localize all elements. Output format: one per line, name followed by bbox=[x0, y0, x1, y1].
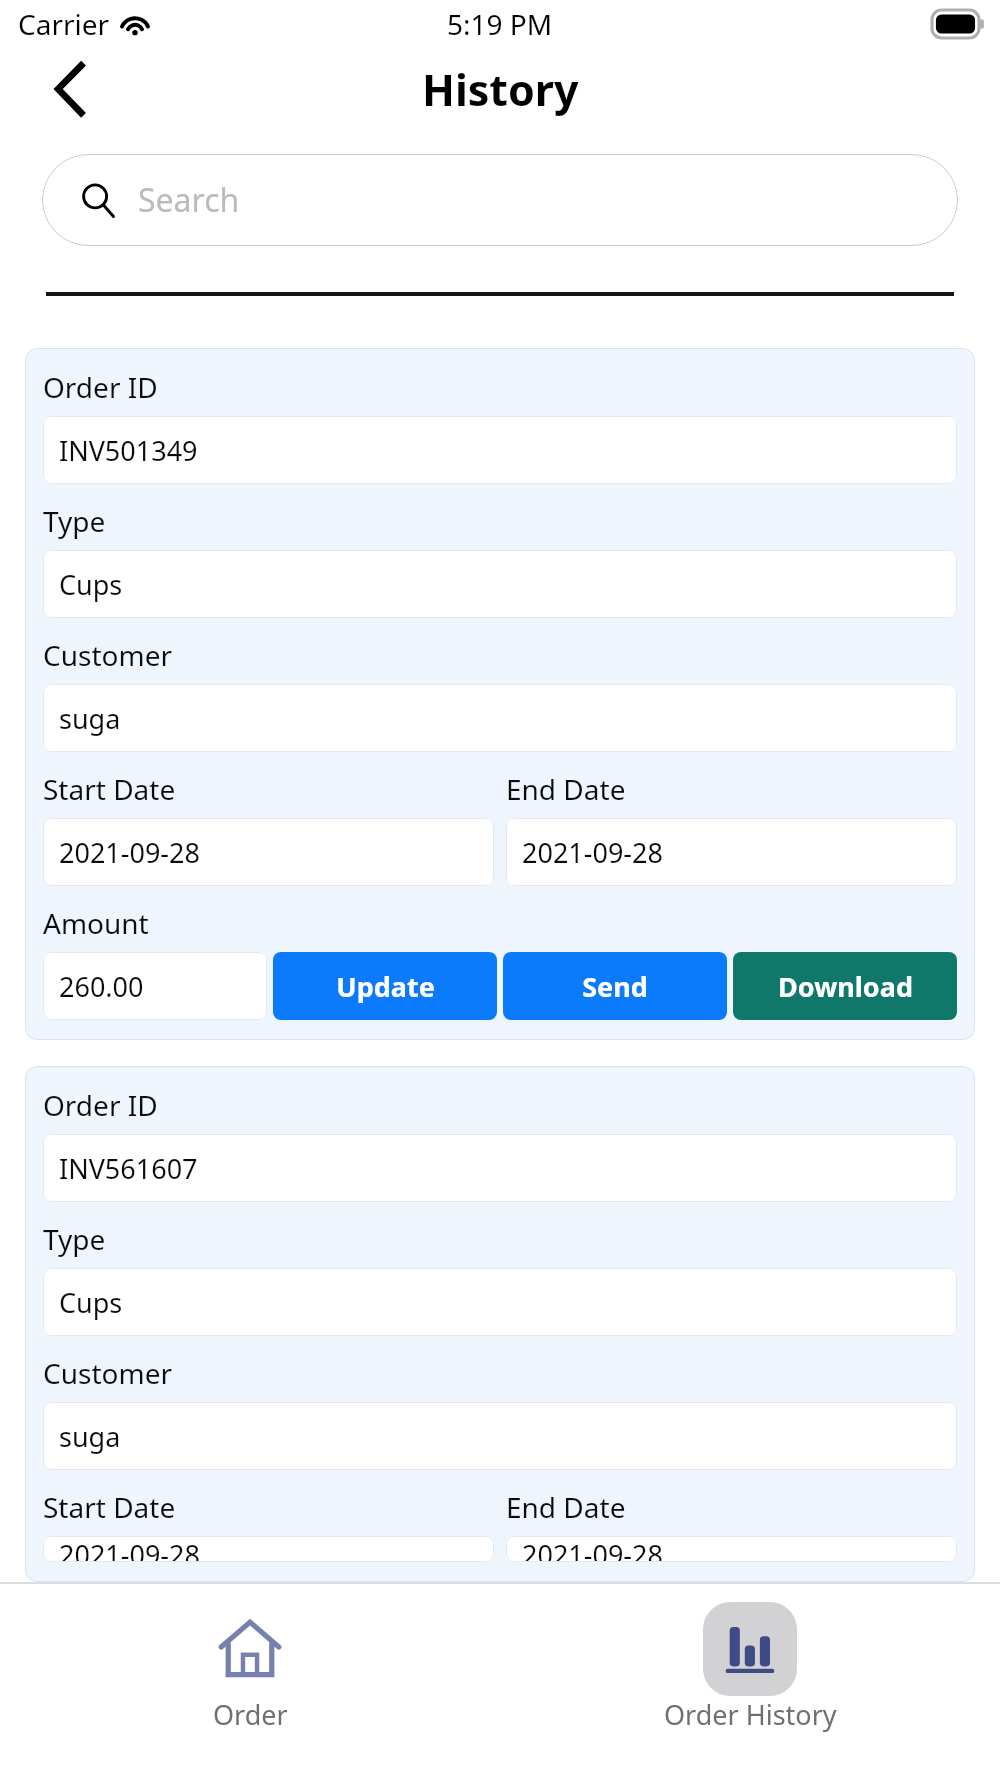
staticText: Type bbox=[43, 1220, 106, 1258]
button[interactable]: Order ID bbox=[25, 1066, 975, 1582]
button[interactable]: Download bbox=[733, 952, 957, 1020]
staticText: Start Date bbox=[43, 770, 176, 808]
staticText: 2021-09-28 bbox=[59, 834, 200, 871]
button[interactable]: Order History bbox=[500, 1602, 1000, 1778]
button[interactable]: 260.00 bbox=[43, 952, 267, 1020]
button[interactable]: suga bbox=[43, 1402, 957, 1470]
button[interactable]: 2021-09-28 bbox=[43, 818, 494, 886]
staticText: INV561607 bbox=[59, 1150, 198, 1187]
staticText: 2021-09-28 bbox=[522, 1536, 663, 1562]
staticText: Amount bbox=[43, 904, 149, 942]
staticText: Carrier bbox=[18, 5, 110, 43]
staticText: Order ID bbox=[43, 1086, 158, 1124]
staticText: Cups bbox=[59, 1284, 123, 1321]
button[interactable]: Search bbox=[42, 154, 958, 246]
staticText: Type bbox=[43, 502, 106, 540]
staticText: 5:19 PM bbox=[447, 5, 553, 43]
staticText: INV501349 bbox=[59, 432, 198, 469]
staticText: Customer bbox=[43, 1354, 172, 1392]
button[interactable]: 2021-09-28 bbox=[43, 1536, 494, 1562]
staticText: Download bbox=[778, 968, 913, 1005]
button[interactable]: Update bbox=[273, 952, 497, 1020]
staticText: Search bbox=[138, 178, 240, 222]
button[interactable]: INV501349 bbox=[43, 416, 957, 484]
staticText: 2021-09-28 bbox=[522, 834, 663, 871]
staticText: 260.00 bbox=[59, 968, 144, 1005]
button[interactable]: INV561607 bbox=[43, 1134, 957, 1202]
button[interactable]: Send bbox=[503, 952, 727, 1020]
staticText: Order History bbox=[664, 1696, 837, 1733]
button[interactable]: 2021-09-28 bbox=[506, 1536, 957, 1562]
staticText: Send bbox=[582, 968, 648, 1005]
staticText: Order bbox=[213, 1696, 288, 1733]
button[interactable]: Order ID bbox=[25, 348, 975, 1040]
staticText: Customer bbox=[43, 636, 172, 674]
button[interactable]: suga bbox=[43, 684, 957, 752]
staticText: History bbox=[422, 60, 579, 119]
staticText: End Date bbox=[506, 770, 626, 808]
button[interactable]: Cups bbox=[43, 1268, 957, 1336]
staticText: Order ID bbox=[43, 368, 158, 406]
staticText: End Date bbox=[506, 1488, 626, 1526]
staticText: suga bbox=[59, 700, 121, 737]
staticText: suga bbox=[59, 1418, 121, 1455]
button[interactable]: 2021-09-28 bbox=[506, 818, 957, 886]
staticText: Update bbox=[336, 968, 435, 1005]
button[interactable]: Cups bbox=[43, 550, 957, 618]
staticText: Start Date bbox=[43, 1488, 176, 1526]
staticText: Cups bbox=[59, 566, 123, 603]
staticText: 2021-09-28 bbox=[59, 1536, 200, 1562]
button[interactable]: Back bbox=[42, 61, 98, 117]
button[interactable]: Order bbox=[0, 1602, 500, 1778]
